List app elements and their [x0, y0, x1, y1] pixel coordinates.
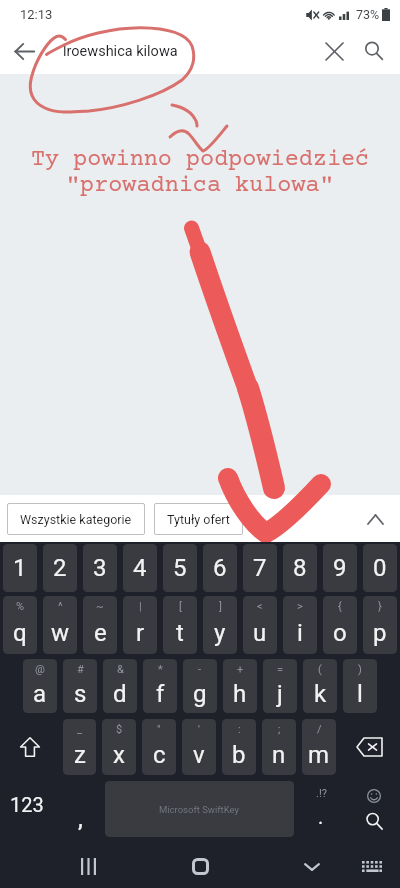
staticText: % — [16, 600, 25, 613]
staticText: | — [139, 600, 142, 613]
staticText: . — [318, 805, 324, 828]
staticText: 7 — [253, 554, 267, 582]
button[interactable]: < — [243, 596, 277, 654]
button[interactable]: 8 — [283, 544, 317, 592]
staticText: .!? — [316, 787, 327, 800]
staticText: 12:13 — [20, 7, 53, 22]
staticText: 2 — [53, 554, 67, 582]
staticText: e — [94, 619, 107, 647]
staticText: _ — [77, 723, 82, 736]
staticText: v — [193, 741, 205, 769]
staticText: l — [357, 680, 363, 708]
staticText: 5 — [173, 554, 187, 582]
button[interactable]: * — [143, 659, 177, 713]
staticText: m — [308, 741, 330, 769]
staticText: = — [277, 663, 284, 676]
staticText: 73% — [356, 7, 380, 22]
button[interactable]: .!? — [296, 781, 348, 837]
button[interactable]: Hide keyboard — [282, 845, 342, 888]
button[interactable]: : — [222, 719, 256, 775]
button[interactable]: + — [223, 659, 257, 713]
staticText: : — [238, 723, 241, 736]
staticText: * — [158, 663, 163, 676]
staticText: 4 — [133, 554, 147, 582]
staticText: Wszystkie kategorie — [20, 512, 132, 527]
button[interactable]: @ — [23, 659, 57, 713]
staticText: d — [113, 680, 127, 708]
button[interactable]: Microsoft SwiftKey — [105, 781, 294, 837]
button[interactable]: [ — [163, 596, 197, 654]
button[interactable]: Back — [5, 32, 43, 70]
button[interactable]: & — [103, 659, 137, 713]
button[interactable]: - — [183, 659, 217, 713]
staticText: ( — [318, 663, 322, 676]
button[interactable]: Home — [170, 845, 230, 888]
staticText: # — [77, 663, 84, 676]
button[interactable]: Emoji and voice search — [348, 781, 400, 837]
staticText: } — [378, 600, 382, 613]
button[interactable]: Wszystkie kategorie — [7, 503, 145, 535]
staticText: ) — [358, 663, 362, 676]
button[interactable]: Shift — [0, 719, 60, 775]
button[interactable]: } — [363, 596, 397, 654]
button[interactable]: # — [63, 659, 97, 713]
button[interactable]: ~ — [83, 596, 117, 654]
button[interactable]: $ — [102, 719, 136, 775]
button[interactable]: | — [123, 596, 157, 654]
button[interactable]: ^ — [43, 596, 77, 654]
button[interactable]: 7 — [243, 544, 277, 592]
button[interactable]: > — [283, 596, 317, 654]
staticText: 6 — [213, 554, 227, 582]
staticText: g — [193, 680, 207, 708]
button[interactable]: _ — [63, 719, 96, 775]
button[interactable]: Tytuły ofert — [154, 503, 243, 535]
button[interactable]: 5 — [163, 544, 197, 592]
button[interactable]: ) — [343, 659, 377, 713]
button[interactable]: 0 — [363, 544, 397, 592]
button[interactable]: = — [263, 659, 297, 713]
button[interactable]: % — [3, 596, 37, 654]
button[interactable]: ' — [182, 719, 216, 775]
button[interactable]: Search — [354, 31, 394, 71]
staticText: 8 — [293, 554, 307, 582]
button[interactable]: 123 — [0, 781, 53, 837]
button[interactable]: " — [142, 719, 176, 775]
staticText: "prowadnica kulowa" — [66, 173, 334, 199]
button[interactable]: { — [323, 596, 357, 654]
staticText: j — [277, 680, 283, 708]
staticText: x — [113, 741, 125, 769]
button[interactable]: 4 — [123, 544, 157, 592]
button[interactable]: 2 — [43, 544, 77, 592]
staticText: lroewshica kilowa — [63, 43, 178, 60]
staticText: t — [176, 619, 184, 647]
button[interactable]: 3 — [83, 544, 117, 592]
staticText: z — [74, 741, 86, 769]
staticText: s — [74, 680, 87, 708]
staticText: 0 — [373, 554, 387, 582]
staticText: 1 — [13, 554, 27, 582]
button[interactable]: 1 — [3, 544, 37, 592]
staticText: p — [373, 619, 387, 647]
button[interactable]: Change keyboard — [344, 845, 400, 888]
staticText: - — [198, 663, 202, 676]
staticText: b — [232, 741, 246, 769]
button[interactable]: Backspace — [339, 719, 400, 775]
button[interactable]: ; — [262, 719, 296, 775]
staticText: n — [272, 741, 286, 769]
staticText: + — [237, 663, 244, 676]
staticText: [ — [179, 600, 182, 613]
staticText: , — [78, 807, 83, 833]
button[interactable]: ( — [303, 659, 337, 713]
button[interactable]: , — [53, 781, 105, 837]
button[interactable]: Collapse suggestions — [356, 500, 394, 538]
staticText: f — [156, 680, 165, 708]
button[interactable]: Recent apps — [58, 845, 118, 888]
button[interactable]: / — [302, 719, 336, 775]
staticText: Microsoft SwiftKey — [159, 804, 240, 815]
staticText: q — [13, 619, 27, 647]
button[interactable]: 9 — [323, 544, 357, 592]
button[interactable]: ] — [203, 596, 237, 654]
button[interactable]: 6 — [203, 544, 237, 592]
staticText: Ty powinno podpowiedzieć — [31, 147, 370, 173]
button[interactable]: Clear — [314, 31, 354, 71]
